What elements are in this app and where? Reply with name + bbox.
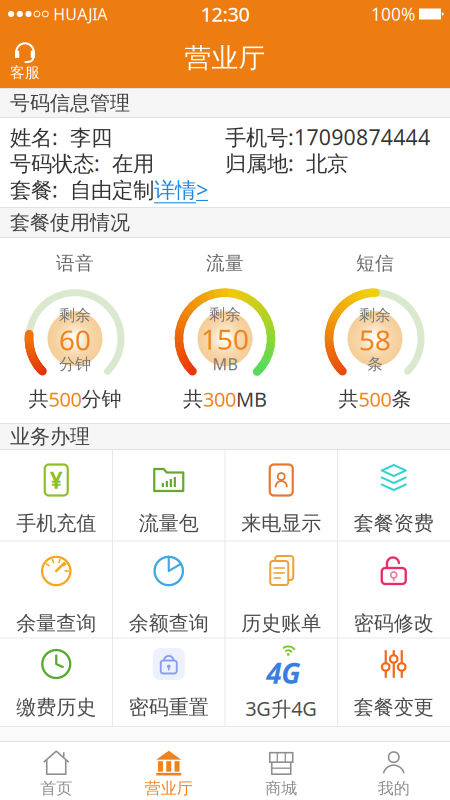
button[interactable]: 套餐变更 <box>337 638 450 727</box>
button[interactable]: 缴费历史 <box>0 638 112 727</box>
staticText: 共 <box>28 387 48 411</box>
staticText: 套餐: 自由定制 <box>10 175 154 204</box>
button[interactable]: 流量包 <box>112 450 225 541</box>
staticText: 500 <box>358 386 391 412</box>
staticText: 缴费历史 <box>16 695 96 720</box>
staticText: 套餐使用情况 <box>10 210 130 235</box>
staticText: 150 <box>201 320 249 357</box>
button[interactable]: 密码重置 <box>112 638 225 727</box>
staticText: 归属地: 北京 <box>225 149 348 177</box>
button[interactable]: 余额查询 <box>112 541 225 638</box>
staticText: 剩余 <box>209 305 241 324</box>
button[interactable]: 我的 <box>337 742 450 800</box>
staticText: 17090874444 <box>294 123 430 151</box>
staticText: 密码修改 <box>354 611 434 636</box>
staticText: 流量包 <box>139 511 199 536</box>
staticText: 余额查询 <box>129 611 209 636</box>
button[interactable]: 客服 <box>0 34 40 81</box>
staticText: 密码重置 <box>129 695 209 720</box>
staticText: 手机号: <box>225 123 294 151</box>
staticText: 分钟 <box>59 354 91 374</box>
staticText: 姓名: 李四 <box>10 123 112 151</box>
button[interactable]: 商城 <box>225 742 337 800</box>
staticText: 业务办理 <box>10 424 90 449</box>
staticText: 商城 <box>265 779 297 798</box>
staticText: 共 <box>183 387 203 411</box>
staticText: 58 <box>359 321 391 358</box>
button[interactable]: ¥ <box>0 450 112 541</box>
staticText: 100% <box>371 2 415 25</box>
staticText: 手机充值 <box>16 511 96 536</box>
staticText: 详情> <box>154 175 208 204</box>
staticText: 号码状态: 在用 <box>10 149 154 177</box>
staticText: 营业厅 <box>184 42 265 74</box>
button[interactable]: 余量查询 <box>0 541 112 638</box>
staticText: 套餐资费 <box>354 511 434 536</box>
staticText: MB <box>212 353 237 375</box>
staticText: 条 <box>391 387 411 411</box>
button[interactable]: 营业厅 <box>112 742 225 800</box>
staticText: 分钟 <box>81 387 121 411</box>
staticText: 条 <box>367 354 383 374</box>
staticText: 12:30 <box>200 1 249 27</box>
button[interactable]: 来电显示 <box>225 450 337 541</box>
staticText: 营业厅 <box>145 779 193 798</box>
staticText: 短信 <box>356 252 394 275</box>
staticText: 客服 <box>10 63 40 81</box>
staticText: ¥ <box>50 465 63 495</box>
button[interactable]: 详情> <box>154 175 208 204</box>
staticText: 历史账单 <box>241 611 321 636</box>
staticText: 60 <box>59 321 91 358</box>
staticText: 号码信息管理 <box>10 91 130 115</box>
staticText: 来电显示 <box>241 511 321 536</box>
button[interactable]: 密码修改 <box>337 541 450 638</box>
button[interactable]: 历史账单 <box>225 541 337 638</box>
staticText: 剩余 <box>59 305 91 325</box>
staticText: 我的 <box>378 779 410 798</box>
staticText: 套餐变更 <box>354 695 434 720</box>
staticText: HUAJIA <box>53 3 107 25</box>
staticText: 首页 <box>40 779 72 798</box>
staticText: 余量查询 <box>16 611 96 636</box>
staticText: 共 <box>338 387 358 411</box>
staticText: 300 <box>203 386 236 412</box>
staticText: 流量 <box>206 252 244 275</box>
staticText: 3G升4G <box>245 695 317 722</box>
staticText: 语音 <box>56 252 94 275</box>
button[interactable]: 首页 <box>0 742 112 800</box>
staticText: 500 <box>48 386 81 412</box>
button[interactable]: 4G <box>225 638 337 727</box>
button[interactable]: 套餐资费 <box>337 450 450 541</box>
staticText: 4G <box>266 654 300 692</box>
staticText: MB <box>236 386 267 412</box>
staticText: 剩余 <box>359 305 391 325</box>
